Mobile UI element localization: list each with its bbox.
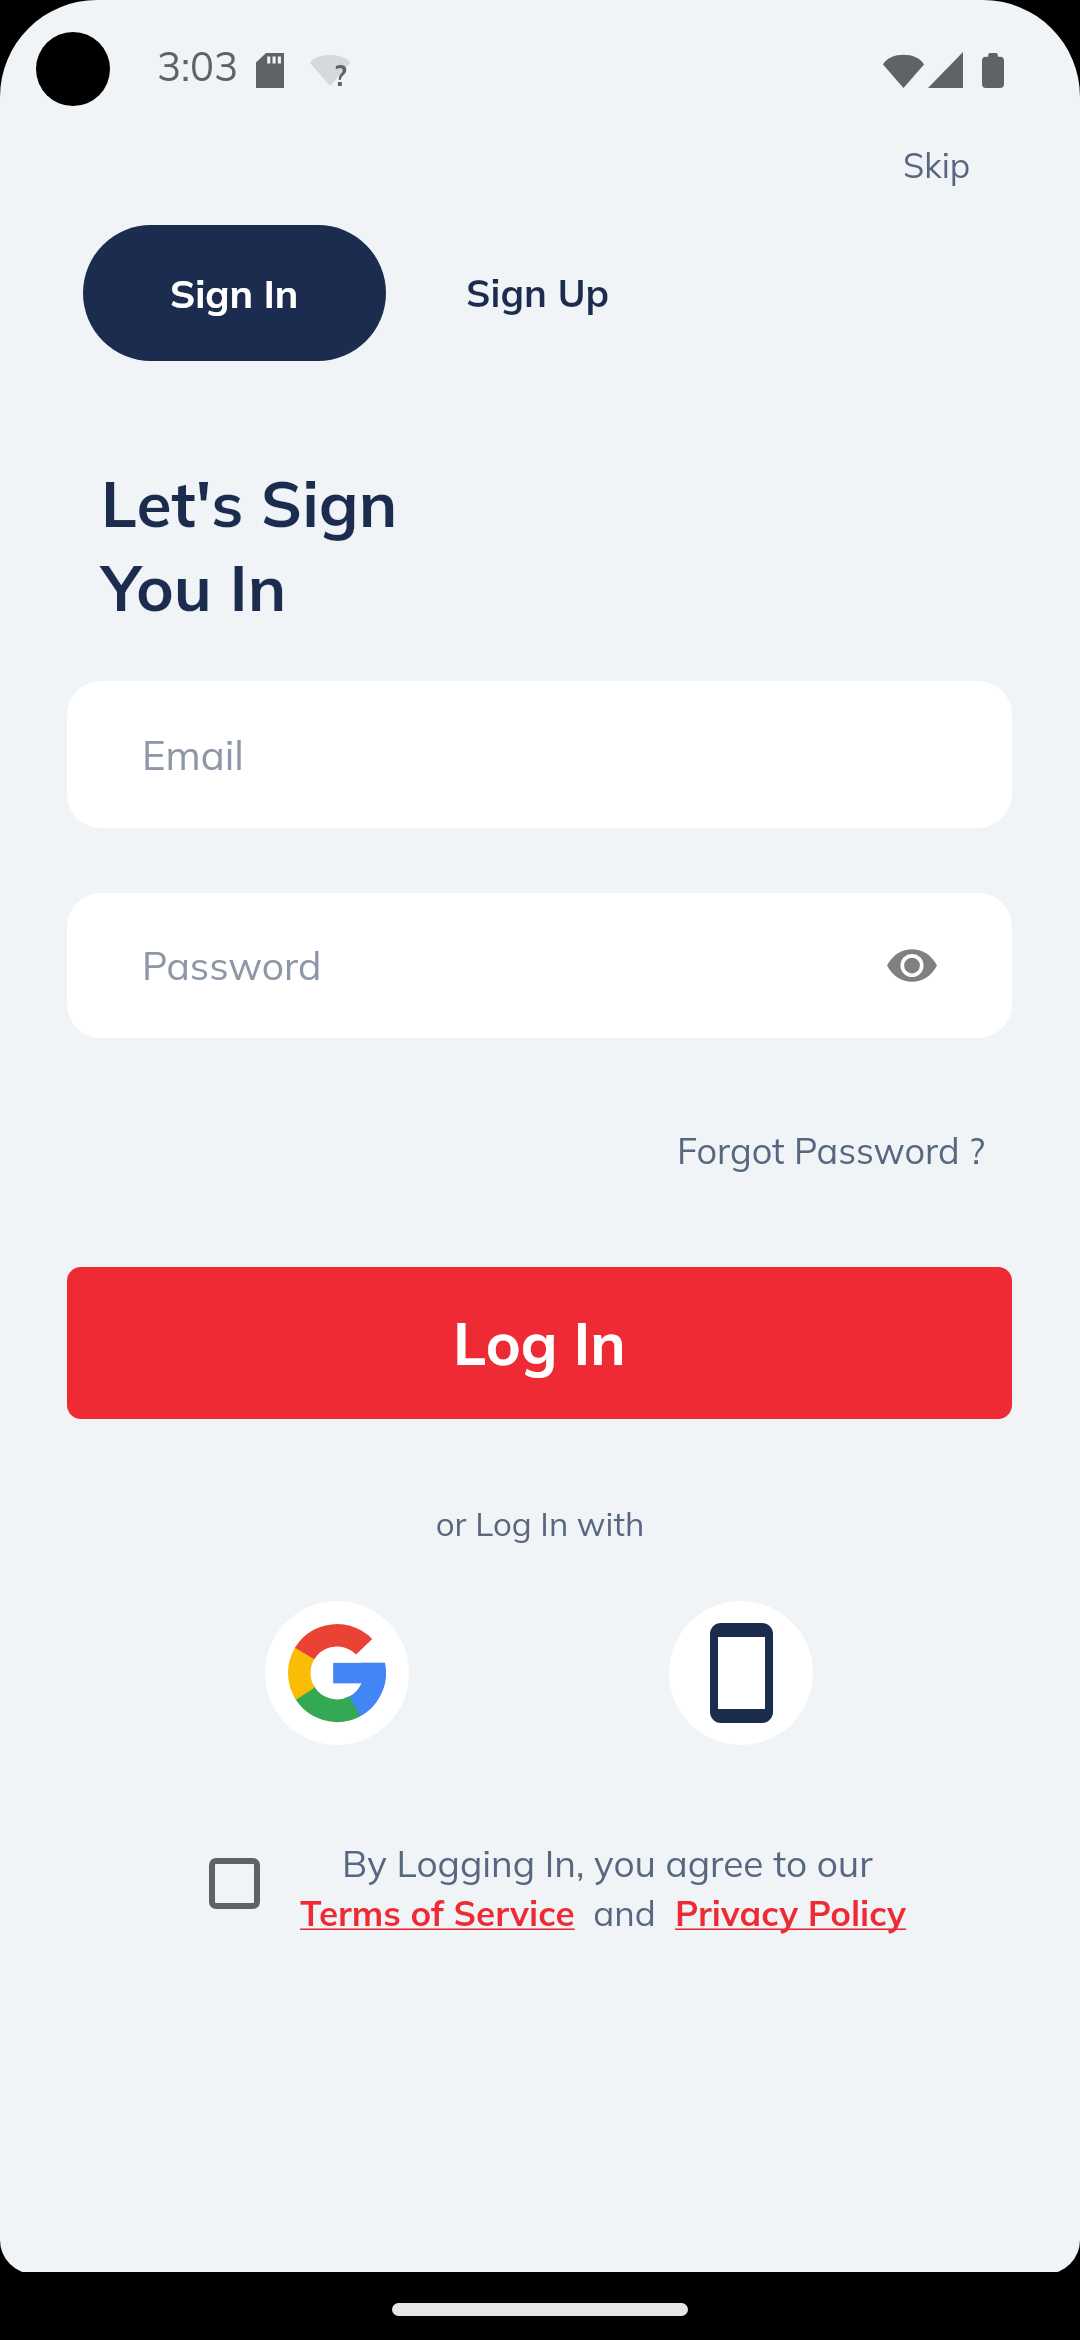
button[interactable]: Sign Up [416, 225, 660, 361]
staticText: ? [334, 58, 347, 93]
staticText: Forgot Password ? [677, 1128, 986, 1173]
staticText: Email [142, 730, 244, 780]
button[interactable]: Log In [67, 1267, 1012, 1419]
button[interactable]: Log in with phone [669, 1601, 813, 1745]
staticText: or Log In with [0, 1503, 1080, 1544]
button[interactable]: Log in with Google [265, 1601, 409, 1745]
button[interactable]: Sign In [83, 225, 386, 361]
button[interactable]: Password [67, 893, 1012, 1038]
staticText: Let's Sign You In [101, 463, 398, 627]
staticText: By Logging In, you agree to our [342, 1840, 873, 1886]
staticText: Sign In [170, 269, 299, 318]
button[interactable]: Email [67, 681, 1012, 828]
staticText: 3:03 [157, 41, 239, 91]
staticText: Password [142, 941, 322, 990]
button[interactable]: Skip [871, 129, 1003, 201]
staticText: Skip [903, 144, 971, 187]
button[interactable]: Show password [862, 893, 962, 1038]
button[interactable]: Agree to terms [209, 1858, 260, 1909]
button[interactable]: Terms of Service [300, 1891, 575, 1935]
staticText: Log In [453, 1306, 626, 1380]
staticText: and [575, 1891, 675, 1935]
staticText: Sign Up [466, 269, 610, 317]
button[interactable]: Privacy Policy [675, 1891, 907, 1935]
button[interactable]: Forgot Password ? [651, 1110, 1012, 1190]
